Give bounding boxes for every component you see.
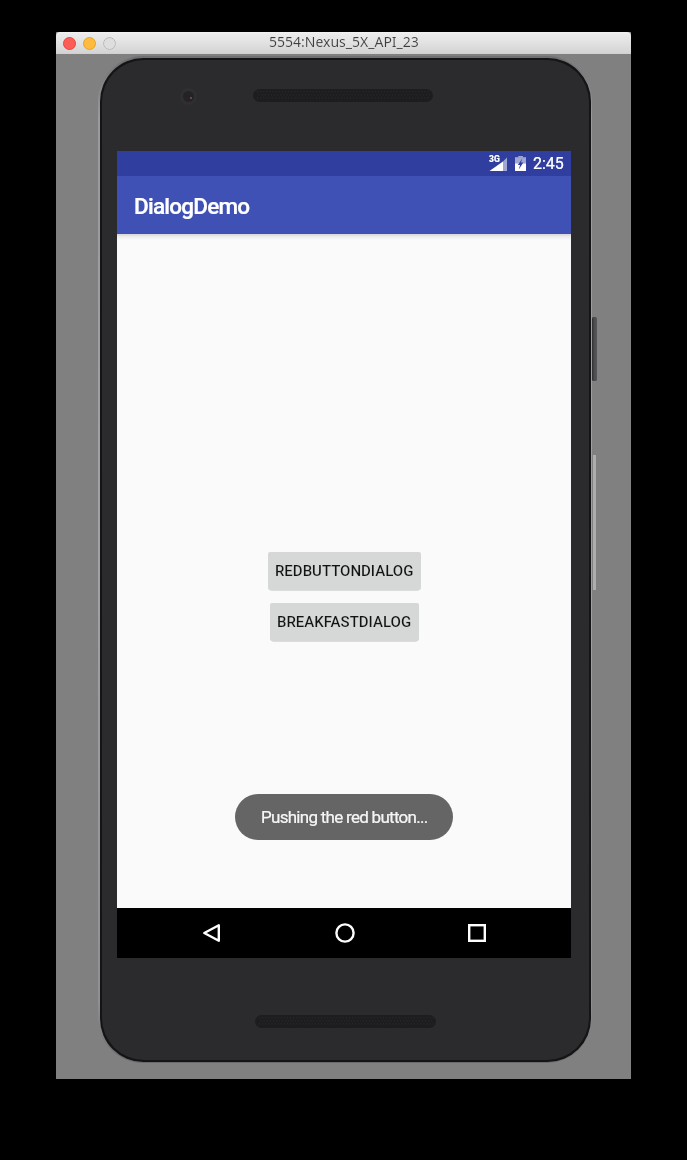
- staticText: DialogDemo: [134, 193, 250, 219]
- button[interactable]: BREAKFASTDIALOG: [270, 603, 419, 641]
- button[interactable]: Zoom: [103, 37, 116, 50]
- staticText: BREAKFASTDIALOG: [277, 613, 412, 631]
- button[interactable]: Recents: [452, 908, 501, 958]
- button[interactable]: Close: [63, 37, 76, 50]
- staticText: REDBUTTONDIALOG: [275, 562, 414, 580]
- staticText: 3G: [489, 154, 500, 164]
- button[interactable]: Minimise: [83, 37, 96, 50]
- button[interactable]: REDBUTTONDIALOG: [268, 552, 421, 590]
- button[interactable]: Back: [187, 908, 236, 958]
- staticText: Pushing the red button...: [261, 807, 428, 827]
- staticText: 5554:Nexus_5X_API_23: [269, 32, 419, 51]
- button[interactable]: Home: [320, 908, 369, 958]
- staticText: 2:45: [533, 154, 564, 173]
